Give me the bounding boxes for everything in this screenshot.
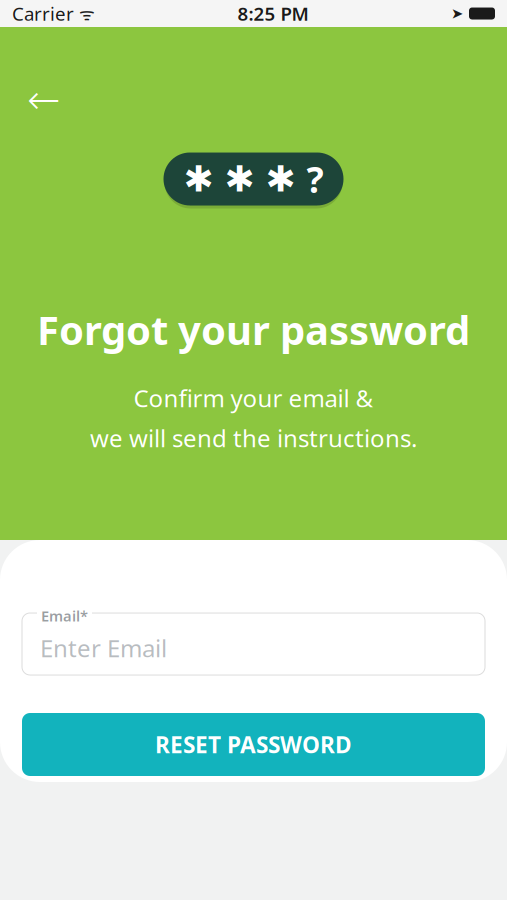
staticText: Carrier <box>12 1 74 26</box>
staticText: we will send the instructions. <box>90 422 417 454</box>
staticText: ✱ <box>183 159 213 199</box>
staticText: ← <box>27 77 61 123</box>
staticText: ➤ <box>451 5 463 22</box>
staticText: ? <box>306 155 323 203</box>
staticText: Email* <box>41 606 88 625</box>
staticText: Enter Email <box>40 632 167 664</box>
staticText: ✱ <box>265 159 295 199</box>
staticText: Confirm your email & <box>133 382 373 414</box>
button[interactable]: Back <box>22 78 66 122</box>
staticText: Forgot your password <box>37 303 470 356</box>
button[interactable]: RESET PASSWORD <box>22 713 485 776</box>
staticText: 8:25 PM <box>237 1 308 26</box>
staticText: ✱ <box>224 159 254 199</box>
staticText: ᯤ <box>74 2 95 25</box>
staticText: RESET PASSWORD <box>155 729 352 759</box>
